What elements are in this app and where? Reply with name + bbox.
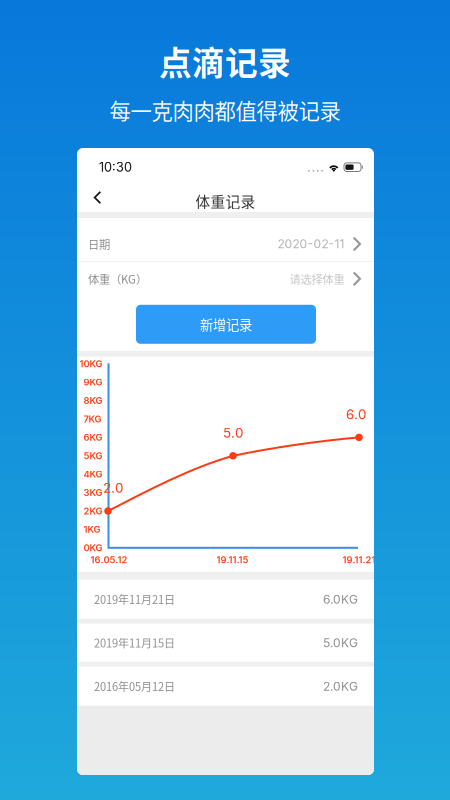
- staticText: 体重（KG）: [88, 271, 147, 287]
- staticText: 19.11.15: [216, 554, 248, 565]
- staticText: 新增记录: [200, 315, 252, 334]
- staticText: 6.0KG: [323, 592, 358, 606]
- staticText: 2019年11月15日: [94, 635, 175, 651]
- staticText: 16.05.12: [90, 554, 127, 565]
- button[interactable]: 体重（KG）: [77, 262, 374, 296]
- staticText: 2020-02-11: [278, 237, 345, 251]
- staticText: 4KG: [83, 469, 102, 480]
- staticText: 10:30: [99, 159, 132, 175]
- staticText: 0KG: [83, 542, 102, 553]
- staticText: 8KG: [83, 395, 102, 406]
- staticText: 6.0: [346, 406, 366, 422]
- staticText: 19.11.21: [342, 554, 375, 565]
- staticText: 请选择体重: [290, 271, 345, 287]
- staticText: 点滴记录: [159, 37, 291, 85]
- button[interactable]: 新增记录: [136, 305, 316, 344]
- staticText: 2KG: [83, 505, 102, 517]
- staticText: 5KG: [83, 450, 102, 461]
- staticText: 每一克肉肉都值得被记录: [109, 95, 340, 125]
- staticText: 1KG: [83, 524, 100, 535]
- staticText: 2.0: [103, 480, 123, 496]
- staticText: 7KG: [83, 413, 101, 425]
- staticText: 10KG: [79, 358, 102, 369]
- button[interactable]: 日期: [77, 227, 374, 261]
- staticText: 9KG: [83, 377, 102, 388]
- staticText: 体重记录: [195, 190, 255, 212]
- staticText: 2016年05月12日: [94, 678, 175, 694]
- staticText: 5.0KG: [323, 635, 358, 650]
- staticText: 2019年11月21日: [94, 591, 175, 607]
- staticText: 5.0: [223, 425, 243, 441]
- staticText: 6KG: [83, 432, 102, 443]
- staticText: 3KG: [83, 487, 102, 498]
- staticText: 日期: [88, 236, 110, 252]
- button[interactable]: 返回: [77, 182, 117, 212]
- staticText: 2.0KG: [323, 679, 358, 693]
